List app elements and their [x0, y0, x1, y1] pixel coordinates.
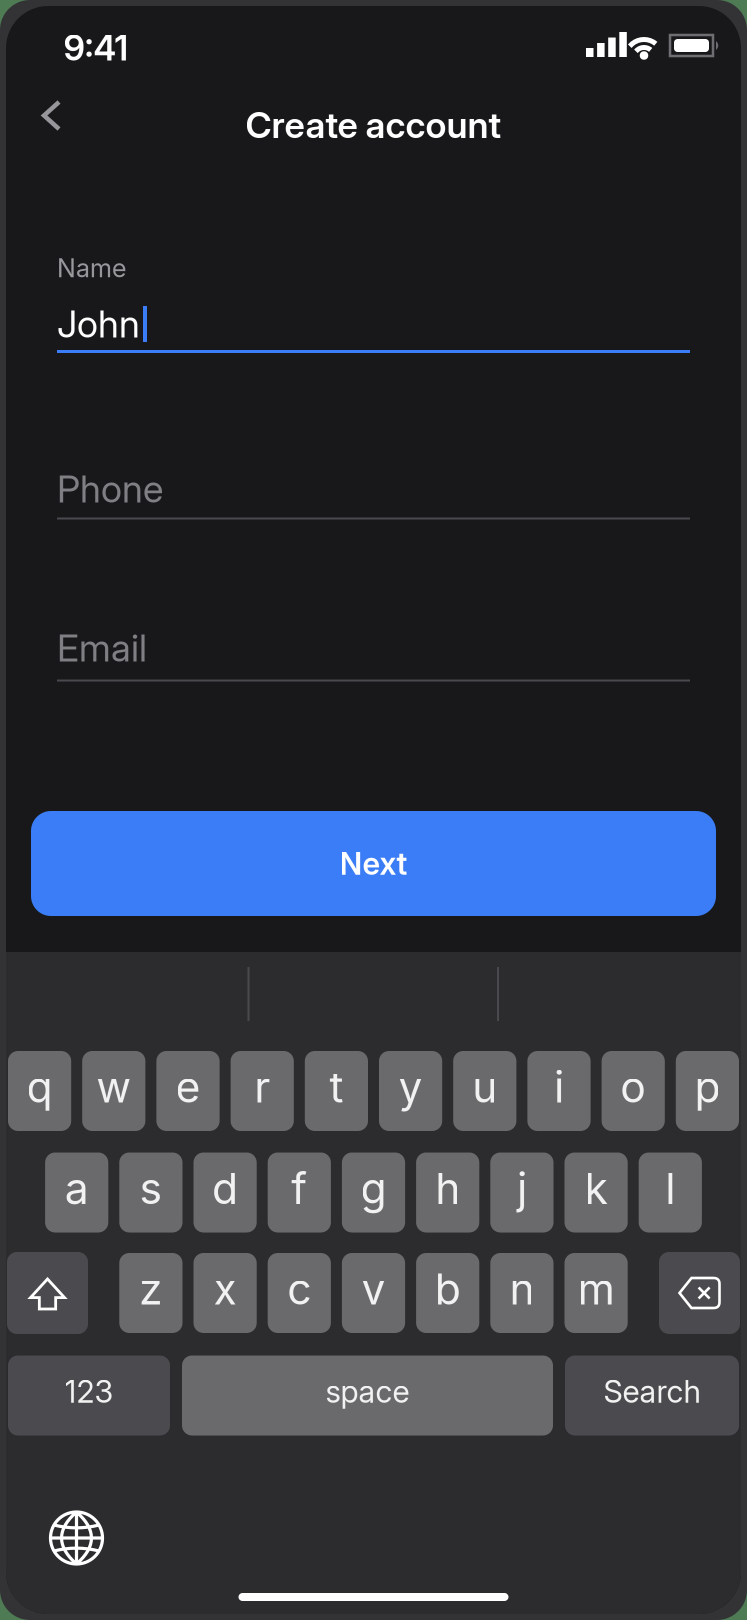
button[interactable]: h: [416, 1152, 479, 1232]
button[interactable]: Back: [30, 88, 73, 143]
staticText: 123: [64, 1373, 113, 1410]
button[interactable]: p: [676, 1051, 739, 1131]
button[interactable]: z: [119, 1253, 182, 1333]
button[interactable]: Name: [57, 246, 690, 358]
button[interactable]: t: [305, 1051, 368, 1131]
button[interactable]: Search: [565, 1355, 739, 1435]
staticText: Search: [603, 1373, 700, 1410]
staticText: s: [139, 1163, 162, 1214]
button[interactable]: i: [527, 1051, 591, 1131]
staticText: j: [517, 1163, 527, 1214]
button[interactable]: x: [193, 1253, 257, 1333]
staticText: Name: [57, 253, 126, 283]
staticText: d: [212, 1163, 238, 1214]
staticText: g: [360, 1163, 386, 1214]
button[interactable]: Phone: [57, 446, 690, 520]
button[interactable]: j: [490, 1152, 553, 1232]
button[interactable]: Next: [31, 811, 716, 916]
button[interactable]: r: [231, 1051, 294, 1131]
button[interactable]: space: [182, 1355, 553, 1435]
staticText: 9:41: [63, 28, 128, 68]
button[interactable]: d: [193, 1152, 257, 1232]
staticText: b: [435, 1264, 461, 1314]
staticText: k: [585, 1163, 608, 1214]
staticText: r: [254, 1062, 270, 1112]
button[interactable]: Delete: [659, 1252, 740, 1334]
button[interactable]: Change keyboard: [40, 1502, 112, 1574]
button[interactable]: k: [564, 1152, 628, 1232]
button[interactable]: y: [379, 1051, 442, 1131]
button[interactable]: s: [119, 1152, 182, 1232]
staticText: p: [694, 1062, 720, 1112]
button[interactable]: o: [602, 1051, 665, 1131]
button[interactable]: Shift: [7, 1252, 88, 1334]
staticText: John: [57, 302, 140, 346]
staticText: t: [329, 1062, 343, 1112]
button[interactable]: e: [156, 1051, 220, 1131]
staticText: q: [27, 1062, 53, 1112]
button[interactable]: q: [8, 1051, 71, 1131]
button[interactable]: b: [416, 1253, 479, 1333]
button[interactable]: n: [490, 1253, 553, 1333]
button[interactable]: v: [342, 1253, 405, 1333]
staticText: e: [175, 1062, 200, 1112]
staticText: Phone: [57, 467, 163, 511]
staticText: space: [325, 1373, 409, 1410]
button[interactable]: c: [268, 1253, 331, 1333]
button[interactable]: Email: [57, 606, 690, 682]
button[interactable]: a: [45, 1152, 108, 1232]
staticText: Create account: [245, 104, 501, 146]
staticText: n: [509, 1264, 534, 1314]
button[interactable]: l: [639, 1152, 702, 1232]
staticText: u: [472, 1062, 497, 1112]
staticText: w: [96, 1062, 131, 1112]
button[interactable]: u: [453, 1051, 516, 1131]
staticText: v: [361, 1264, 385, 1314]
staticText: Next: [339, 845, 407, 882]
button[interactable]: w: [82, 1051, 145, 1131]
staticText: i: [554, 1062, 564, 1112]
staticText: Email: [57, 626, 147, 670]
staticText: f: [291, 1163, 307, 1214]
button[interactable]: m: [564, 1253, 628, 1333]
button[interactable]: 123: [8, 1355, 170, 1435]
staticText: x: [214, 1264, 237, 1314]
staticText: o: [620, 1062, 646, 1112]
staticText: y: [399, 1062, 423, 1112]
staticText: m: [578, 1264, 615, 1314]
button[interactable]: g: [342, 1152, 405, 1232]
staticText: a: [65, 1163, 89, 1214]
staticText: h: [435, 1163, 460, 1214]
button[interactable]: f: [268, 1152, 331, 1232]
staticText: l: [665, 1163, 675, 1214]
staticText: c: [287, 1264, 311, 1314]
staticText: z: [139, 1264, 163, 1314]
